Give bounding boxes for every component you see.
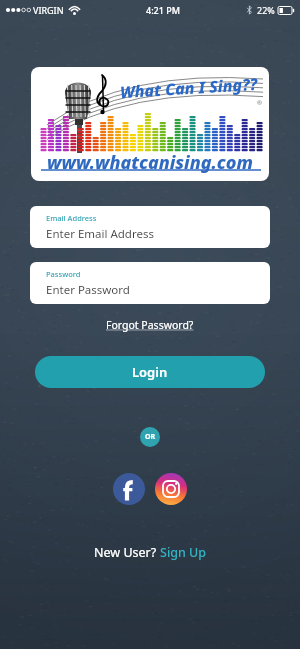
staticText: Enter Password [46, 282, 130, 298]
button[interactable]: Forgot Password? [106, 318, 194, 332]
button[interactable]: Login [35, 356, 265, 388]
button[interactable]: Password [30, 262, 270, 304]
button[interactable]: Email Address [30, 206, 270, 248]
button[interactable] [155, 473, 187, 505]
staticText: ® [257, 99, 262, 107]
staticText: 22% [257, 4, 275, 16]
staticText: New User? [94, 544, 160, 561]
staticText: 4:21 PM [146, 4, 180, 16]
button[interactable]: Sign Up [160, 544, 207, 561]
staticText: Enter Email Address [46, 226, 154, 242]
button[interactable] [113, 473, 145, 505]
staticText: Login [132, 363, 168, 381]
staticText: Password [46, 269, 81, 279]
staticText: www.whatcanising.com [47, 150, 253, 175]
staticText: Email Address [46, 213, 97, 223]
staticText: What Can I Sing?? [119, 73, 259, 103]
staticText: Sign Up [160, 544, 207, 561]
staticText: OR [145, 432, 156, 442]
staticText: VIRGIN [33, 4, 64, 16]
